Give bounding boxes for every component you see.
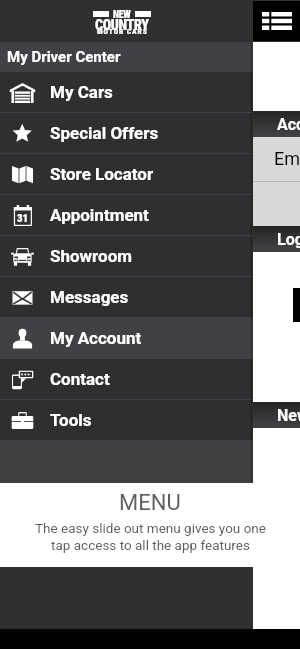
staticText: MOTOR CARS <box>97 27 148 36</box>
button[interactable]: My Account <box>0 318 253 358</box>
staticText: COUNTRY <box>95 17 149 33</box>
staticText: MENU <box>119 490 181 516</box>
staticText: My Account <box>50 328 142 348</box>
staticText: Showroom <box>50 246 132 266</box>
button[interactable]: My Cars <box>0 72 253 112</box>
staticText: Email <box>274 148 300 169</box>
staticText: 31 <box>17 212 29 225</box>
staticText: Account <box>277 115 300 134</box>
button[interactable]: Showroom <box>0 236 253 276</box>
staticText: My Driver Center <box>7 48 121 66</box>
staticText: NEW <box>113 9 131 19</box>
staticText: My Cars <box>50 82 113 102</box>
staticText: Tools <box>50 410 92 430</box>
staticText: New User <box>277 406 300 425</box>
button[interactable]: Special Offers <box>0 113 253 153</box>
staticText: Messages <box>50 287 129 307</box>
button[interactable]: Tools <box>0 400 253 440</box>
staticText: Appointment <box>50 205 149 225</box>
staticText: Special Offers <box>50 123 159 143</box>
staticText: Login <box>277 230 300 249</box>
staticText: Contact <box>50 369 110 389</box>
button[interactable]: Open menu <box>253 1 300 41</box>
button[interactable]: 31 <box>0 195 253 235</box>
staticText: The easy slide out menu gives you one ta… <box>35 520 266 554</box>
button[interactable]: Store Locator <box>0 154 253 194</box>
staticText: Store Locator <box>50 164 154 184</box>
button[interactable]: Contact <box>0 359 253 399</box>
button[interactable]: Messages <box>0 277 253 317</box>
